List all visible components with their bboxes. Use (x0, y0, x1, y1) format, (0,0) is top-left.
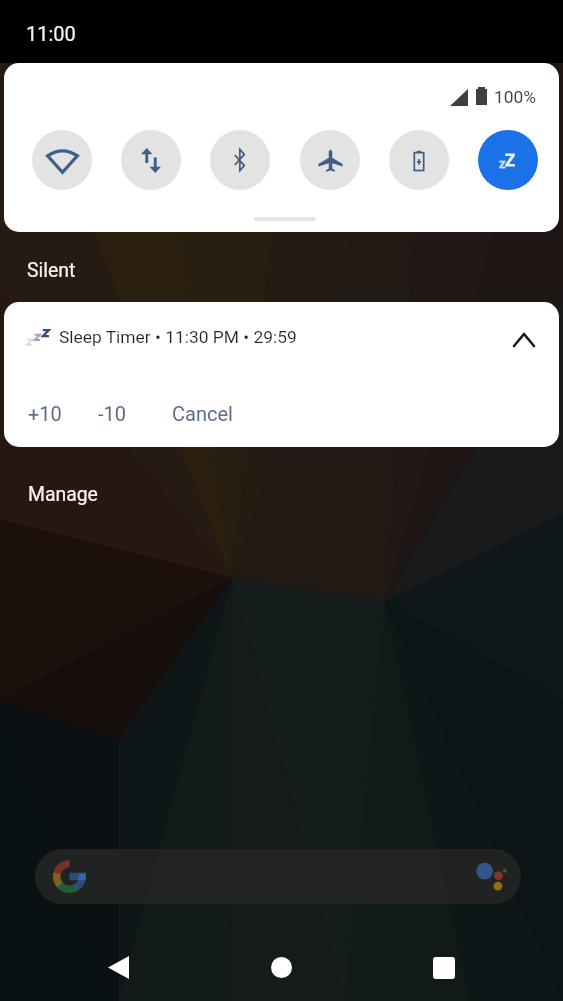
staticText: z (499, 156, 506, 171)
button[interactable]: Collapse (502, 318, 546, 362)
button[interactable]: Cancel (164, 396, 241, 431)
button[interactable]: Back (85, 934, 151, 1001)
button[interactable]: Bluetooth (210, 130, 270, 190)
button[interactable]: Airplane mode (300, 130, 360, 190)
staticText: Z (505, 150, 516, 170)
staticText: 11:00 (26, 22, 76, 45)
button[interactable]: -10 (90, 396, 135, 431)
button[interactable]: Sleep Timer • 11:30 PM • 29:59 (4, 302, 559, 376)
button[interactable]: Bedtime mode (478, 130, 538, 190)
button[interactable]: Recents (411, 934, 477, 1001)
button[interactable]: Google Search (35, 849, 521, 904)
staticText: Sleep Timer • 11:30 PM • 29:59 (59, 327, 297, 347)
button[interactable]: Home (248, 934, 314, 1001)
staticText: 100% (494, 87, 537, 107)
staticText: Silent (27, 259, 76, 282)
button[interactable]: Wi-Fi (32, 130, 92, 190)
other: Google Search (53, 860, 86, 893)
other: Google Assistant (476, 862, 507, 890)
staticText: Cancel (172, 402, 233, 425)
button[interactable]: Mobile data (121, 130, 181, 190)
staticText: -10 (98, 402, 127, 425)
button[interactable]: +10 (20, 396, 70, 431)
staticText: +10 (28, 402, 62, 425)
button[interactable]: Battery saver (389, 130, 449, 190)
staticText: Manage (28, 483, 98, 506)
